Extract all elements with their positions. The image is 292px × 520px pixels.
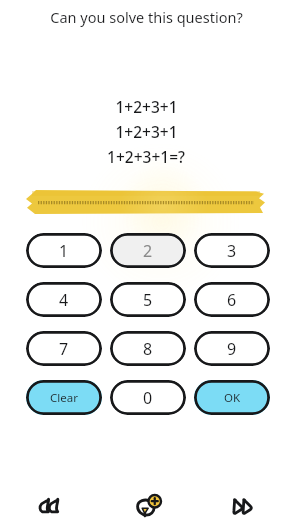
staticText: 7 [59, 338, 69, 360]
button[interactable]: 5 [110, 282, 186, 317]
staticText: Can you solve this question? [50, 7, 243, 27]
button[interactable]: OK [194, 380, 270, 415]
staticText: 3 [227, 240, 237, 262]
button[interactable]: 1 [26, 233, 102, 268]
button[interactable]: 2 [110, 233, 186, 268]
staticText: 4 [59, 289, 69, 311]
button[interactable]: Hint [124, 483, 170, 520]
staticText: OK [224, 390, 241, 406]
button[interactable]: 9 [194, 331, 270, 366]
staticText: 5 [143, 289, 153, 311]
button[interactable]: 4 [26, 282, 102, 317]
staticText: 0 [143, 387, 153, 409]
staticText: 2 [143, 240, 153, 262]
button[interactable] [0, 180, 292, 222]
button[interactable]: 0 [110, 380, 186, 415]
staticText: 8 [143, 338, 153, 360]
staticText: 1 [59, 240, 69, 262]
staticText: Clear [50, 390, 78, 406]
button[interactable]: Previous question [26, 483, 72, 520]
staticText: 1+2+3+1 [115, 96, 178, 117]
button[interactable]: Clear [26, 380, 102, 415]
button[interactable]: Skip question [221, 483, 267, 520]
button[interactable]: 8 [110, 331, 186, 366]
button[interactable]: 7 [26, 331, 102, 366]
staticText: 9 [227, 338, 237, 360]
staticText: 1+2+3+1=? [107, 146, 185, 167]
button[interactable]: 6 [194, 282, 270, 317]
button[interactable]: 3 [194, 233, 270, 268]
staticText: 6 [227, 289, 237, 311]
staticText: 1+2+3+1 [115, 121, 178, 142]
